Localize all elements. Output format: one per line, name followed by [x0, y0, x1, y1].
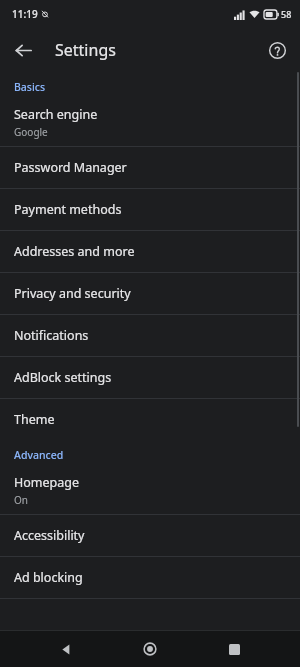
staticText: On [14, 493, 28, 507]
staticText: Search engine [14, 106, 98, 123]
button[interactable]: Payment methods [0, 189, 300, 230]
staticText: Addresses and more [14, 243, 135, 260]
button[interactable]: Search engine [0, 99, 300, 146]
button[interactable]: Recent apps [216, 631, 252, 667]
staticText: 11:19 [12, 7, 38, 21]
staticText: Payment methods [14, 201, 122, 218]
staticText: Advanced [14, 448, 64, 462]
staticText: Theme [14, 411, 55, 428]
button[interactable]: Accessibility [0, 515, 300, 556]
staticText: Password Manager [14, 159, 127, 176]
button[interactable]: Help [261, 34, 293, 66]
button[interactable]: Ad blocking [0, 557, 300, 598]
staticText: Accessibility [14, 527, 85, 544]
staticText: Basics [14, 80, 46, 94]
button[interactable]: Back [48, 631, 84, 667]
staticText: AdBlock settings [14, 369, 112, 386]
button[interactable]: Back [6, 33, 40, 67]
staticText: Google [14, 125, 48, 139]
button[interactable]: Homepage [0, 467, 300, 514]
button[interactable]: AdBlock settings [0, 357, 300, 398]
button[interactable]: Privacy and security [0, 273, 300, 314]
staticText: Ad blocking [14, 569, 83, 586]
staticText: Settings [55, 39, 116, 61]
button[interactable]: Home [132, 631, 168, 667]
button[interactable]: Password Manager [0, 147, 300, 188]
button[interactable]: Theme [0, 399, 300, 440]
staticText: Homepage [14, 474, 80, 491]
staticText: Notifications [14, 327, 89, 344]
staticText: Privacy and security [14, 285, 131, 302]
staticText: 58 [281, 8, 292, 20]
button[interactable]: Notifications [0, 315, 300, 356]
button[interactable]: Addresses and more [0, 231, 300, 272]
